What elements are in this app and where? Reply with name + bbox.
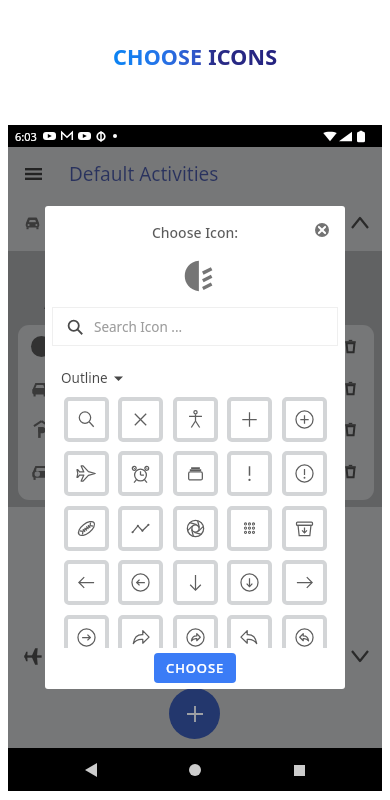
button[interactable]: Inbox icon (173, 451, 218, 496)
button[interactable]: Arrow forward icon (282, 560, 327, 605)
button[interactable]: Accessible icon (173, 397, 218, 442)
button[interactable]: Football icon (64, 506, 109, 551)
button[interactable]: Archive icon (282, 506, 327, 551)
button[interactable]: Alarm icon (118, 451, 163, 496)
button[interactable]: Share circle icon (173, 615, 218, 648)
button[interactable]: Priority icon (227, 451, 272, 496)
button[interactable]: Close dialog (311, 219, 333, 241)
button[interactable]: Share icon (118, 615, 163, 648)
button[interactable]: CHOOSE (154, 653, 236, 683)
button[interactable]: Back circle icon (118, 560, 163, 605)
staticText: CHOOSE ICONS (113, 42, 278, 71)
staticText: Search Icon ... (94, 318, 183, 336)
button[interactable]: Back (70, 749, 112, 791)
staticText: 6:03 (15, 129, 37, 144)
button[interactable]: Down circle icon (227, 560, 272, 605)
button[interactable]: Add circle icon (282, 397, 327, 442)
button[interactable]: Forward circle icon (64, 615, 109, 648)
staticText: Activities (44, 297, 92, 313)
button[interactable]: Flight icon (64, 451, 109, 496)
button[interactable]: Add icon (227, 397, 272, 442)
button[interactable]: Chart icon (118, 506, 163, 551)
button[interactable]: Reply icon (227, 615, 272, 648)
button[interactable]: Add activity (169, 688, 220, 739)
button[interactable]: Home (174, 749, 216, 791)
button[interactable]: Reply circle icon (282, 615, 327, 648)
button[interactable]: Open navigation menu (16, 157, 50, 191)
button[interactable]: Arrow back icon (64, 560, 109, 605)
button[interactable]: Outline (61, 369, 123, 387)
button[interactable]: Apps icon (227, 506, 272, 551)
staticText: Outline (61, 369, 108, 387)
staticText: Default Activities (69, 161, 219, 187)
button[interactable]: Close icon (118, 397, 163, 442)
button[interactable]: Recent apps (278, 749, 320, 791)
staticText: CHOOSE (166, 659, 225, 677)
button[interactable]: Search icon (64, 397, 109, 442)
button[interactable]: Search Icon ... (52, 307, 338, 346)
staticText: Choose Icon: (45, 223, 345, 242)
button[interactable]: Error icon (282, 451, 327, 496)
button[interactable]: Aperture icon (173, 506, 218, 551)
button[interactable]: Arrow down icon (173, 560, 218, 605)
